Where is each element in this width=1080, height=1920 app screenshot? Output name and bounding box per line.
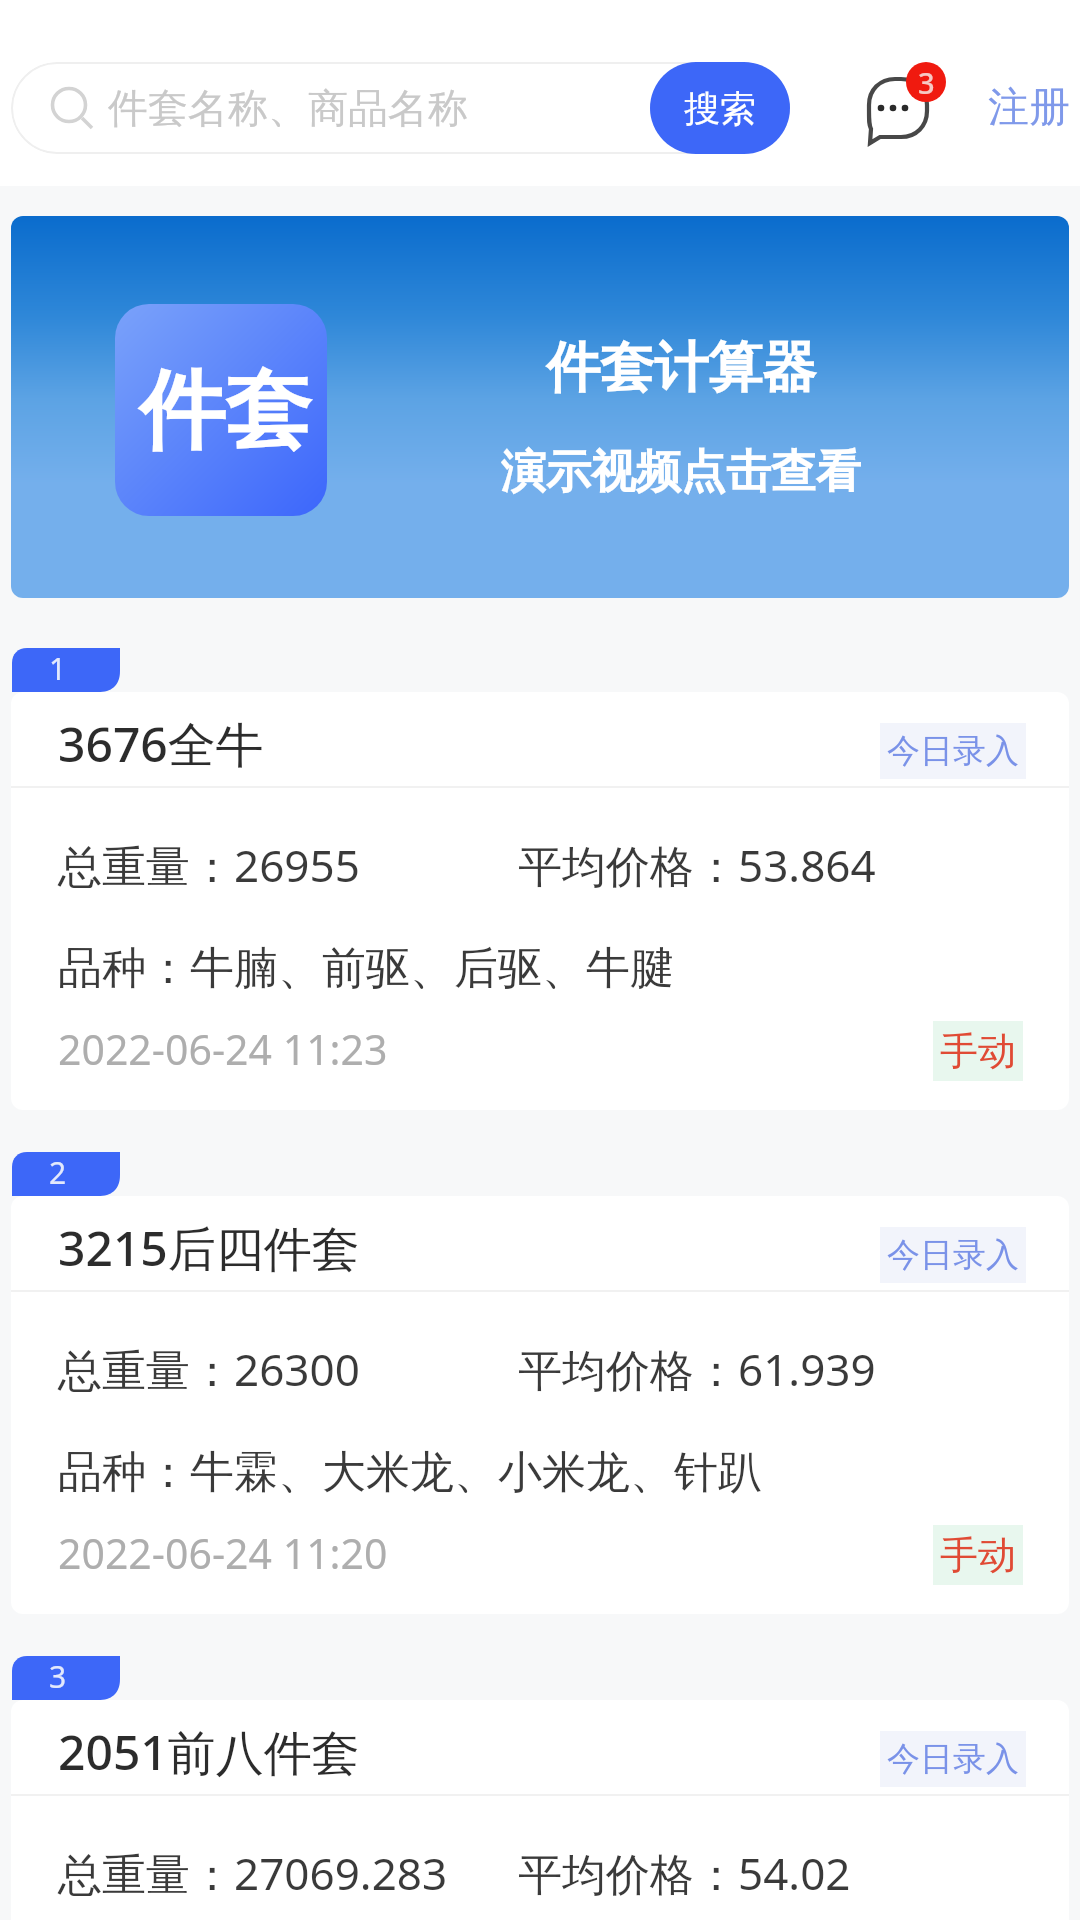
button[interactable]: 3676全牛 — [11, 692, 1069, 1110]
staticText: 品种：牛霖、大米龙、小米龙、针趴 — [58, 1445, 762, 1500]
staticText: 总重量：26300 — [58, 1339, 360, 1399]
button[interactable]: 今日录入 — [880, 1731, 1026, 1787]
staticText: 2 — [49, 1152, 67, 1193]
button[interactable]: 件套 — [11, 216, 1069, 598]
staticText: 3676全牛 — [58, 711, 264, 777]
button[interactable]: 今日录入 — [880, 723, 1026, 779]
button[interactable]: 搜索 — [650, 62, 790, 154]
staticText: 3 — [918, 63, 935, 102]
staticText: 1 — [49, 648, 67, 689]
staticText: 2022-06-24 11:20 — [58, 1525, 388, 1581]
staticText: 件套计算器 — [546, 334, 816, 402]
button[interactable]: 手动 — [933, 1021, 1023, 1081]
staticText: 平均价格：61.939 — [518, 1339, 876, 1399]
button[interactable]: 注册 — [978, 72, 1080, 144]
staticText: 今日录入 — [887, 1234, 1019, 1276]
button[interactable]: 3215后四件套 — [11, 1196, 1069, 1614]
staticText: 3215后四件套 — [58, 1215, 360, 1281]
staticText: 注册 — [988, 82, 1070, 134]
staticText: 今日录入 — [887, 1738, 1019, 1780]
button[interactable]: 件套名称、商品名称 — [11, 62, 790, 154]
staticText: 件套 — [139, 357, 311, 465]
staticText: 品种：牛腩、前驱、后驱、牛腱 — [58, 941, 674, 996]
staticText: 3 — [49, 1656, 67, 1697]
button[interactable]: 手动 — [933, 1525, 1023, 1585]
button[interactable]: 2051前八件套 — [11, 1700, 1069, 1920]
button[interactable]: Messages — [862, 60, 954, 148]
staticText: 演示视频点击查看 — [501, 444, 861, 501]
staticText: 平均价格：54.02 — [518, 1843, 851, 1903]
button[interactable]: 今日录入 — [880, 1227, 1026, 1283]
staticText: 平均价格：53.864 — [518, 835, 876, 895]
staticText: 2022-06-24 11:23 — [58, 1021, 388, 1077]
staticText: 总重量：26955 — [58, 835, 360, 895]
staticText: 手动 — [940, 1531, 1016, 1579]
staticText: 手动 — [940, 1027, 1016, 1075]
staticText: 总重量：27069.283 — [58, 1843, 448, 1903]
staticText: 2051前八件套 — [58, 1719, 360, 1785]
staticText: 搜索 — [684, 86, 756, 131]
staticText: 件套名称、商品名称 — [108, 83, 468, 133]
staticText: 今日录入 — [887, 730, 1019, 772]
